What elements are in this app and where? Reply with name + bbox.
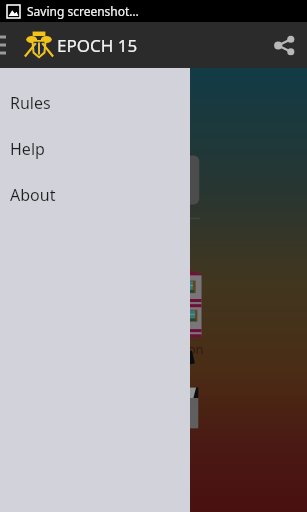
staticText: EPOCH 15 xyxy=(57,34,138,57)
button[interactable] xyxy=(0,362,307,434)
button[interactable]: Rules xyxy=(0,80,190,126)
staticText: About xyxy=(10,184,56,206)
button[interactable]: About xyxy=(0,172,190,218)
staticText: Help xyxy=(10,138,45,160)
button[interactable] xyxy=(0,130,307,228)
button[interactable] xyxy=(0,252,307,340)
staticText: Saving screenshot… xyxy=(27,3,139,19)
button[interactable]: Share xyxy=(261,22,307,68)
staticText: Rules xyxy=(10,92,51,114)
button[interactable]: Open navigation drawer xyxy=(0,22,14,68)
button[interactable]: Help xyxy=(0,126,190,172)
staticText: Accommodation xyxy=(103,340,204,358)
